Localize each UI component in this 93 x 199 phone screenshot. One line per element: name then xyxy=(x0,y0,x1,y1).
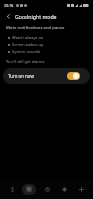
button[interactable]: Add xyxy=(74,184,88,195)
button[interactable]: Back xyxy=(3,11,13,21)
button[interactable]: Tiles xyxy=(22,184,36,195)
staticText: Mute notifications and pause xyxy=(6,25,65,31)
button[interactable]: Watch face xyxy=(40,184,54,195)
staticText: Turn on now xyxy=(8,73,34,79)
button[interactable]: Turn on now xyxy=(3,68,90,84)
staticText: Watch always on xyxy=(12,35,44,40)
staticText: Screen wakes up xyxy=(12,42,44,47)
staticText: 23:16 xyxy=(4,3,14,8)
staticText: System sounds xyxy=(12,49,41,54)
staticText: Goodnight mode xyxy=(15,13,57,20)
staticText: You'll still get alarms xyxy=(6,59,45,64)
button[interactable]: Apps xyxy=(5,184,19,195)
button[interactable]: Settings xyxy=(57,184,71,195)
